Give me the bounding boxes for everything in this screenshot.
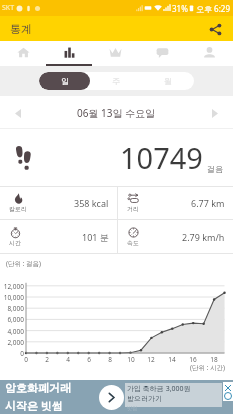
staticText: 빗썸 [127, 405, 137, 411]
staticText: 16 [188, 355, 198, 364]
staticText: 358 kcal [74, 197, 109, 209]
staticText: 거리 [127, 205, 139, 213]
staticText: 암호화폐거래 [5, 381, 71, 395]
staticText: 31% [172, 3, 188, 14]
button[interactable]: 주 [90, 72, 142, 90]
button[interactable]: 속도 [118, 220, 233, 253]
staticText: 가입 축하금 3,000원 [127, 384, 191, 394]
staticText: 2,000 [0, 338, 24, 347]
staticText: 18 [209, 355, 219, 364]
staticText: 속도 [127, 239, 139, 247]
staticText: 0 [21, 355, 31, 364]
staticText: 6.77 km [191, 197, 225, 209]
button[interactable]: 일 [39, 72, 90, 90]
staticText: 12 [146, 355, 156, 364]
staticText: 6 [84, 355, 94, 364]
staticText: 8 [105, 355, 115, 364]
staticText: 4 [63, 355, 73, 364]
staticText: 8,000 [0, 304, 24, 313]
button[interactable]: Home [0, 41, 46, 66]
staticText: 4,000 [0, 327, 24, 336]
staticText: (단위 : 걸음) [6, 259, 42, 268]
staticText: 10749 [120, 138, 203, 177]
staticText: 06월 13일 수요일 [77, 106, 156, 120]
staticText: 0 [0, 349, 24, 358]
staticText: 일 [61, 76, 69, 86]
staticText: 오후 6:29 [196, 3, 230, 14]
button[interactable]: 월 [142, 72, 194, 90]
button[interactable]: Profile [186, 41, 233, 66]
button[interactable]: Chat [139, 41, 186, 66]
button[interactable]: Next day [207, 105, 223, 121]
button[interactable]: Share [204, 18, 226, 40]
staticText: 칼로리 [9, 205, 27, 213]
staticText: 2.79 km/h [182, 231, 225, 243]
staticText: 101 분 [82, 231, 109, 243]
staticText: 14 [167, 355, 177, 364]
staticText: 걸음 [207, 164, 223, 174]
staticText: 받으러가기 [127, 394, 162, 403]
button[interactable]: 칼로리 [0, 187, 117, 219]
staticText: 6,000 [0, 315, 24, 324]
staticText: 10 [126, 355, 136, 364]
staticText: 2 [42, 355, 52, 364]
staticText: 12,000 [0, 282, 24, 291]
staticText: 시간 [9, 239, 21, 247]
staticText: 월 [164, 76, 172, 86]
button[interactable]: Ranking [92, 41, 139, 66]
staticText: 시작은 빗썸 [5, 398, 63, 413]
staticText: SKT [2, 3, 15, 13]
button[interactable]: Close ad [223, 382, 233, 401]
staticText: 통계 [10, 22, 32, 36]
button[interactable]: 암호화폐거래 [0, 380, 233, 414]
button[interactable]: Open ad [99, 385, 124, 410]
button[interactable]: Statistics [46, 41, 92, 66]
staticText: 10,000 [0, 293, 24, 302]
staticText: (단위 : 시간) [190, 363, 226, 372]
button[interactable]: 거리 [118, 187, 233, 219]
staticText: 주 [112, 76, 120, 86]
button[interactable]: 시간 [0, 220, 117, 253]
button[interactable]: Previous day [10, 105, 26, 121]
